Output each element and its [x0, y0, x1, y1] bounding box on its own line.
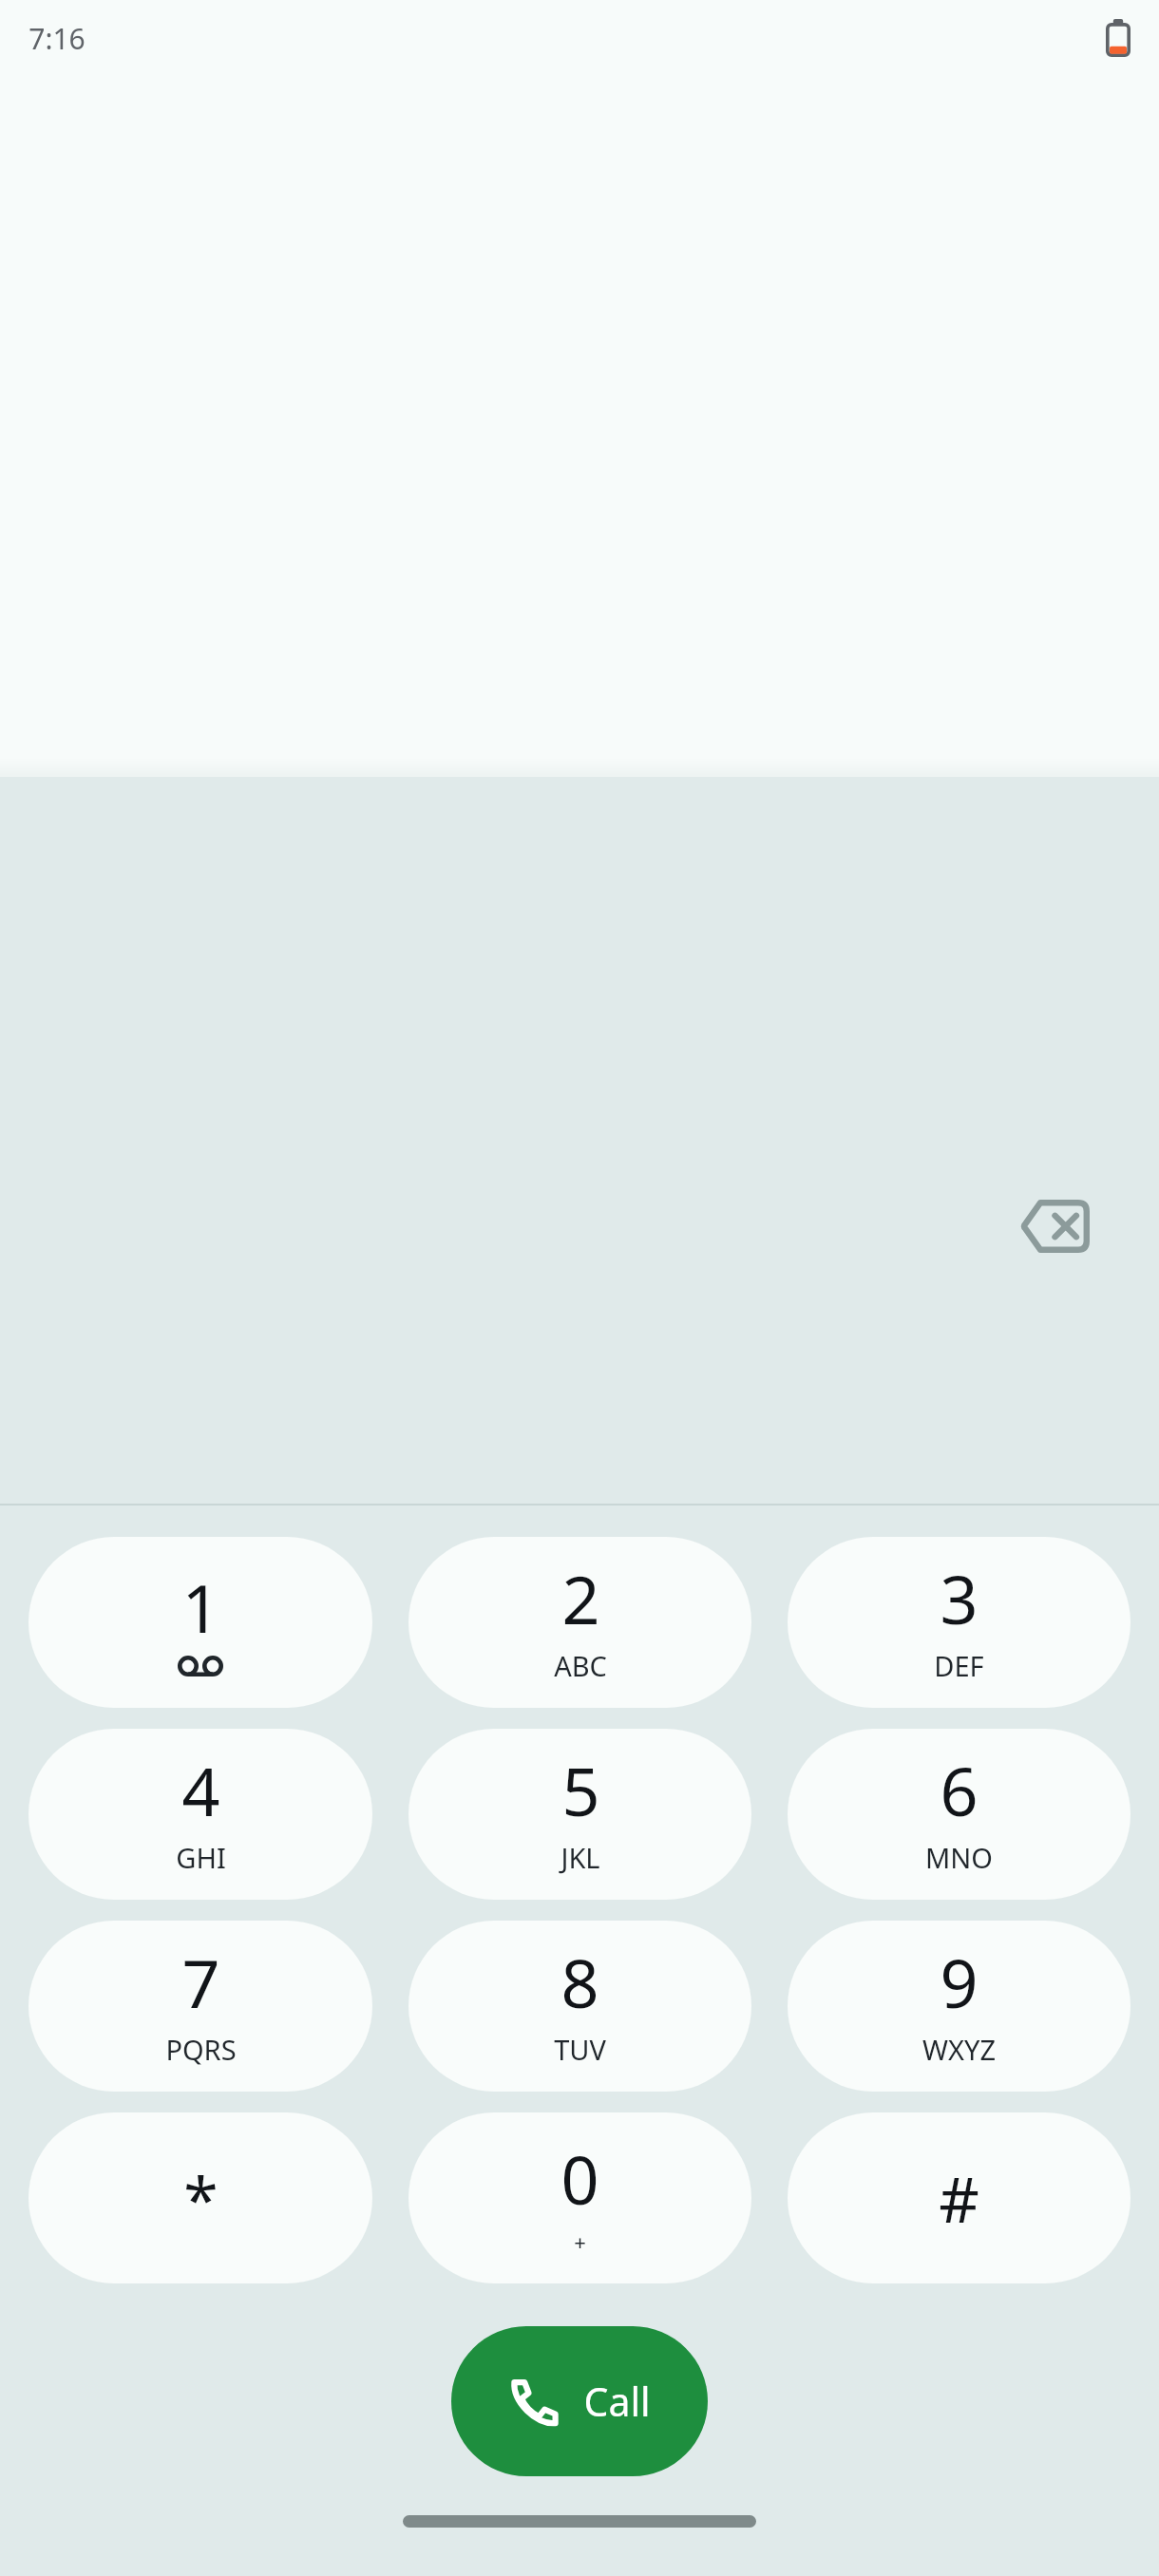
- staticText: *: [183, 2155, 218, 2241]
- staticText: 7: [181, 1937, 220, 2027]
- staticText: GHI: [176, 1839, 226, 1876]
- staticText: 2: [561, 1553, 600, 1643]
- button[interactable]: 7: [28, 1921, 372, 2092]
- staticText: 3: [940, 1553, 978, 1643]
- staticText: TUV: [554, 2031, 606, 2068]
- staticText: DEF: [934, 1647, 984, 1684]
- staticText: ABC: [554, 1647, 607, 1684]
- button[interactable]: 5: [408, 1729, 751, 1900]
- staticText: MNO: [925, 1839, 993, 1876]
- staticText: +: [574, 2227, 586, 2256]
- button[interactable]: 3: [788, 1537, 1130, 1708]
- staticText: 0: [560, 2133, 599, 2224]
- button[interactable]: 1: [28, 1537, 372, 1708]
- button[interactable]: 4: [28, 1729, 372, 1900]
- staticText: 9: [940, 1937, 978, 2027]
- staticText: JKL: [560, 1839, 600, 1876]
- button[interactable]: 9: [788, 1921, 1130, 2092]
- button[interactable]: 2: [408, 1537, 751, 1708]
- staticText: 5: [561, 1745, 600, 1835]
- button[interactable]: 0: [408, 2112, 751, 2283]
- button[interactable]: #: [788, 2112, 1130, 2283]
- button[interactable]: Backspace: [1001, 1173, 1108, 1279]
- button[interactable]: 8: [408, 1921, 751, 2092]
- button[interactable]: *: [28, 2112, 372, 2283]
- staticText: Call: [583, 2375, 651, 2428]
- staticText: PQRS: [165, 2031, 237, 2068]
- staticText: 6: [940, 1745, 978, 1835]
- staticText: WXYZ: [922, 2031, 996, 2068]
- staticText: 1: [181, 1562, 220, 1652]
- button[interactable]: Call: [451, 2326, 708, 2476]
- staticText: 7:16: [28, 19, 85, 58]
- staticText: #: [939, 2155, 979, 2241]
- button[interactable]: 6: [788, 1729, 1130, 1900]
- staticText: 4: [181, 1745, 220, 1835]
- staticText: 8: [560, 1937, 599, 2027]
